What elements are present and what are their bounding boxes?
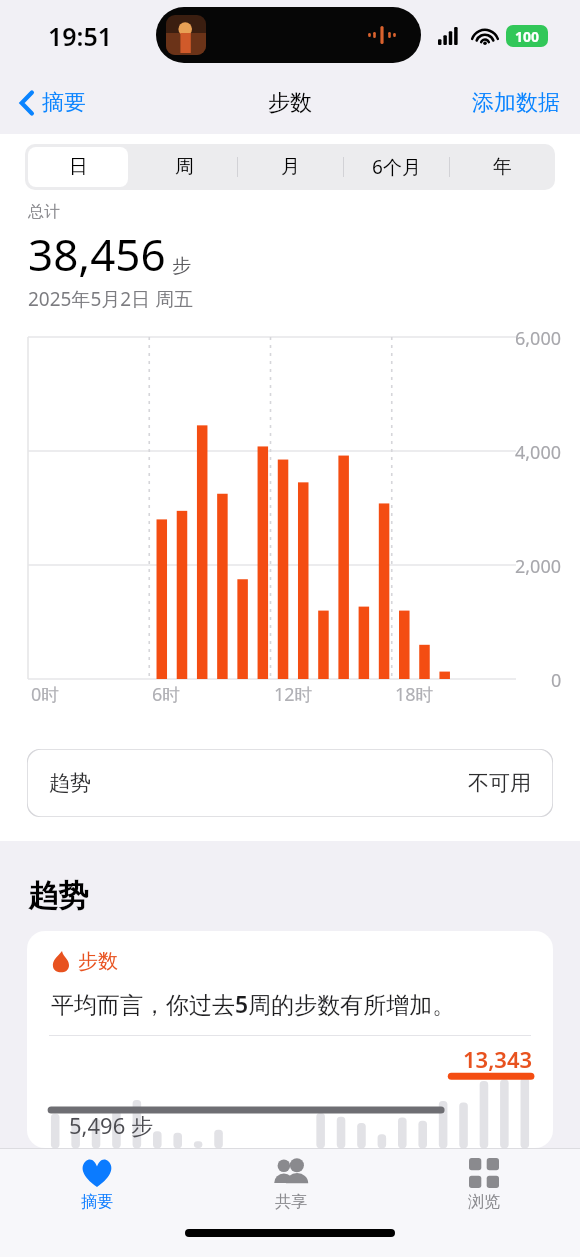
button[interactable]: 周 [134, 147, 234, 187]
staticText: 平均而言，你过去5周的步数有所增加。 [51, 988, 456, 1019]
staticText: 38,456 [28, 224, 166, 284]
staticText: 0时 [31, 682, 60, 707]
staticText: 2,000 [515, 554, 562, 579]
staticText: 步数 [268, 89, 312, 117]
staticText: 年 [493, 155, 512, 179]
staticText: 18时 [395, 682, 434, 707]
staticText: 13,343 [463, 1044, 533, 1074]
staticText: 月 [281, 155, 300, 179]
staticText: 趋势 [28, 877, 88, 915]
staticText: 摘要 [81, 1192, 113, 1212]
staticText: 摘要 [42, 89, 86, 117]
staticText: 日 [69, 155, 88, 179]
staticText: 步数 [78, 949, 118, 974]
button[interactable]: 浏览 [387, 1149, 580, 1225]
staticText: 6个月 [372, 154, 421, 180]
staticText: 浏览 [468, 1192, 500, 1212]
staticText: 趋势 [49, 770, 91, 796]
button[interactable]: 步数 [27, 931, 553, 1148]
staticText: 共享 [275, 1192, 307, 1212]
button[interactable]: 年 [453, 147, 552, 187]
staticText: 100 [515, 27, 540, 46]
staticText: 12时 [274, 682, 313, 707]
staticText: 总计 [28, 202, 60, 222]
staticText: 19:51 [48, 19, 113, 53]
staticText: 5,496 步 [69, 1110, 153, 1140]
staticText: 4,000 [515, 440, 562, 465]
staticText: 步 [172, 254, 191, 278]
button[interactable]: 摘要 [0, 1149, 194, 1225]
staticText: 不可用 [468, 770, 531, 796]
staticText: 周 [175, 155, 194, 179]
button[interactable]: 添加数据 [464, 83, 568, 123]
staticText: 6时 [152, 682, 181, 707]
button[interactable]: 6个月 [347, 147, 446, 187]
staticText: 2025年5月2日 周五 [28, 286, 194, 312]
button[interactable]: 月 [241, 147, 340, 187]
staticText: 6,000 [515, 326, 562, 351]
button[interactable]: 趋势 [27, 749, 553, 817]
button[interactable]: 共享 [194, 1149, 387, 1225]
button[interactable]: 摘要 [14, 83, 92, 123]
staticText: 添加数据 [472, 89, 560, 117]
button[interactable]: 日 [28, 147, 128, 187]
staticText: 0 [551, 668, 562, 693]
